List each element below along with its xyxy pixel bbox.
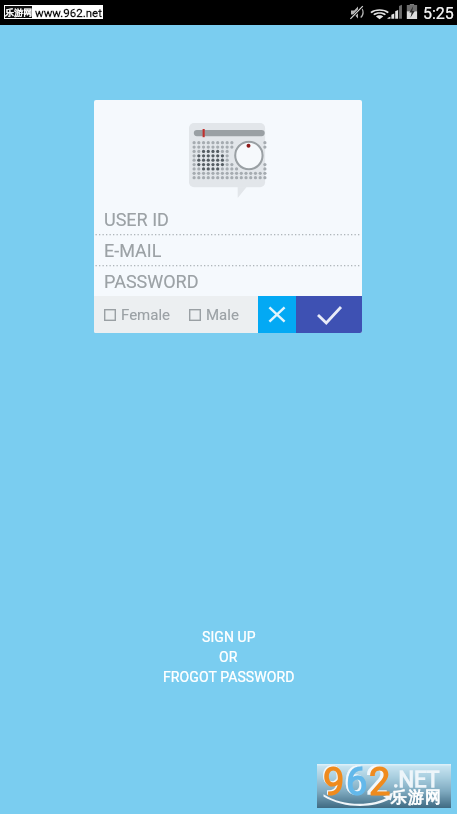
staticText: PASSWORD xyxy=(104,271,199,292)
button[interactable]: Female xyxy=(104,306,171,324)
staticText: 乐游网 xyxy=(5,7,32,18)
staticText: SIGN UP xyxy=(202,629,256,645)
staticText: 乐游网 xyxy=(390,788,441,808)
staticText: Male xyxy=(206,306,239,324)
staticText: OR xyxy=(219,649,238,665)
button[interactable]: Male xyxy=(189,306,239,324)
button[interactable]: USER ID xyxy=(94,204,362,235)
button[interactable]: SIGN UP xyxy=(194,627,264,647)
staticText: www.962.net xyxy=(35,6,102,19)
staticText: Female xyxy=(121,306,171,324)
button[interactable]: PASSWORD xyxy=(94,266,362,297)
button[interactable]: Cancel xyxy=(258,296,296,333)
staticText: 9 xyxy=(323,760,345,804)
button[interactable]: FROGOT PASSWORD xyxy=(155,667,303,687)
button[interactable]: Confirm xyxy=(296,296,362,333)
staticText: FROGOT PASSWORD xyxy=(163,669,295,685)
staticText: USER ID xyxy=(104,209,169,230)
staticText: 2 xyxy=(369,760,391,804)
staticText: 962 xyxy=(322,759,388,803)
button[interactable]: OR xyxy=(211,647,246,667)
staticText: .NET xyxy=(393,767,440,793)
staticText: 5:25 xyxy=(423,4,454,23)
staticText: 6 xyxy=(346,760,368,804)
staticText: E-MAIL xyxy=(104,240,162,261)
button[interactable]: E-MAIL xyxy=(94,235,362,266)
